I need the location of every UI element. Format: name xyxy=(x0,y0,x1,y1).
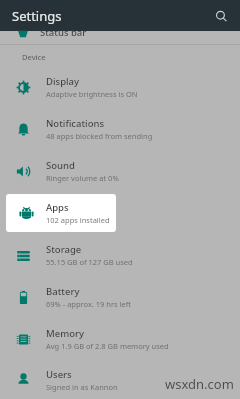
staticText: Notifications xyxy=(46,117,105,130)
staticText: Adaptive brightness is ON xyxy=(46,89,138,99)
staticText: 69% - approx. 19 hrs left xyxy=(46,299,132,309)
button[interactable]: Status bar xyxy=(0,31,240,44)
staticText: Status bar xyxy=(40,26,87,39)
button[interactable]: Display xyxy=(0,66,240,108)
staticText: Users xyxy=(46,368,72,381)
staticText: Apps xyxy=(46,201,69,214)
staticText: 55.15 GB of 127 GB used xyxy=(46,257,133,267)
staticText: Display xyxy=(46,75,80,88)
staticText: Ringer volume at 0% xyxy=(46,173,119,183)
staticText: Sound xyxy=(46,159,75,172)
button[interactable]: Apps xyxy=(6,194,116,232)
button[interactable]: Notifications xyxy=(0,108,240,150)
staticText: 48 apps blocked from sending xyxy=(46,131,153,141)
staticText: Storage xyxy=(46,243,82,256)
staticText: Signed in as Kannon xyxy=(46,382,118,392)
staticText: Device xyxy=(22,52,46,62)
button[interactable]: Storage xyxy=(0,234,240,276)
staticText: Avg 1.9 GB of 2.8 GB memory used xyxy=(46,341,169,351)
staticText: wsxdn.com xyxy=(165,375,234,393)
button[interactable]: Memory xyxy=(0,318,240,360)
button[interactable]: Battery xyxy=(0,276,240,318)
button[interactable]: Users xyxy=(0,360,240,399)
button[interactable]: Search xyxy=(210,5,232,27)
staticText: 102 apps installed xyxy=(46,215,110,225)
staticText: Settings xyxy=(12,7,62,25)
staticText: Memory xyxy=(46,327,85,340)
button[interactable]: Sound xyxy=(0,150,240,192)
staticText: Battery xyxy=(46,285,80,298)
